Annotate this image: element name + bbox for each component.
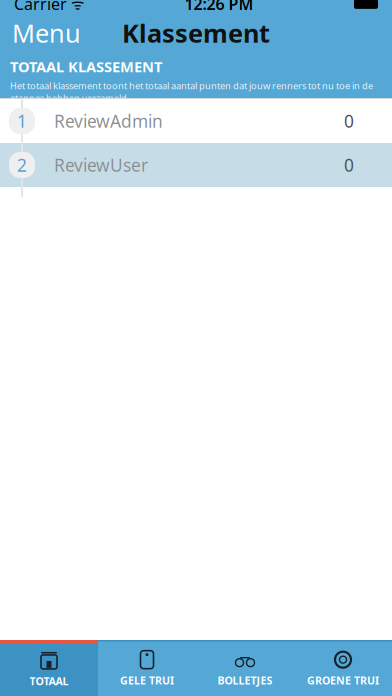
- button[interactable]: TOTAAL: [0, 640, 98, 696]
- staticText: 12:26 PM: [184, 0, 253, 14]
- staticText: Menu: [12, 16, 81, 50]
- button[interactable]: 1: [0, 99, 392, 143]
- staticText: TOTAAL KLASSEMENT: [10, 57, 162, 76]
- button[interactable]: GELE TRUI: [98, 640, 196, 696]
- staticText: BOLLETJES: [217, 673, 272, 687]
- staticText: ReviewAdmin: [54, 109, 163, 132]
- button[interactable]: GROENE TRUI: [294, 640, 392, 696]
- staticText: ᯤ: [67, 0, 84, 14]
- staticText: ReviewUser: [54, 153, 148, 176]
- staticText: Klassement: [122, 16, 270, 50]
- staticText: GELE TRUI: [120, 673, 174, 687]
- staticText: 0: [344, 109, 354, 132]
- button[interactable]: BOLLETJES: [196, 640, 294, 696]
- staticText: 0: [344, 153, 354, 176]
- staticText: 2: [17, 153, 27, 176]
- staticText: Carrier: [14, 0, 67, 14]
- staticText: TOTAAL: [29, 674, 68, 688]
- staticText: Het totaal klassement toont het totaal a…: [10, 79, 373, 104]
- staticText: 1: [17, 109, 27, 132]
- button[interactable]: 2: [0, 143, 392, 187]
- staticText: GROENE TRUI: [307, 673, 379, 687]
- button[interactable]: Menu: [0, 14, 93, 52]
